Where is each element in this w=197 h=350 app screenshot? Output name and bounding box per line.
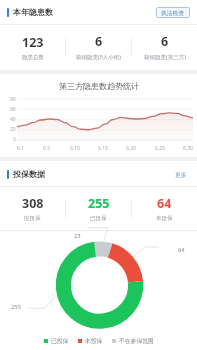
staticText: 已投保 [90, 215, 107, 222]
staticText: 核销隐患(5人小组) [76, 53, 121, 61]
staticText: 123 [22, 34, 44, 51]
staticText: 第三方隐患数趋势统计 [59, 81, 139, 91]
button[interactable]: 255 [66, 195, 131, 222]
staticText: 6.5 [43, 145, 51, 152]
staticText: 255 [88, 195, 110, 212]
staticText: 执法检查 [161, 9, 185, 16]
staticText: 未投保 [156, 215, 173, 222]
staticText: 投保数据 [13, 169, 45, 179]
staticText: 6.10 [70, 145, 80, 152]
button[interactable]: 更多 [172, 169, 190, 180]
staticText: 更多 [175, 171, 187, 178]
staticText: 已投保 [51, 337, 69, 344]
staticText: 23 [74, 232, 81, 240]
staticText: 本年隐患数 [13, 7, 53, 17]
staticText: 隐患总数 [22, 54, 44, 61]
staticText: 应投保 [24, 215, 41, 222]
staticText: 6 [95, 33, 103, 50]
staticText: 6 [161, 33, 169, 50]
staticText: 6.1 [17, 145, 25, 152]
staticText: 未投保 [85, 337, 103, 344]
button[interactable]: 123 [0, 34, 65, 61]
staticText: 64 [178, 246, 185, 254]
button[interactable]: 不在参保范围 [111, 336, 155, 345]
staticText: 6.30 [183, 145, 193, 152]
staticText: 80 [10, 96, 16, 103]
staticText: 0 [13, 136, 16, 143]
button[interactable]: 执法检查 [156, 7, 190, 18]
staticText: 40 [10, 116, 16, 123]
button[interactable]: 6 [66, 33, 131, 61]
staticText: 308 [22, 195, 44, 212]
staticText: 60 [10, 106, 16, 113]
staticText: 不在参保范围 [119, 337, 154, 344]
staticText: 255 [11, 303, 21, 311]
staticText: 64 [157, 195, 172, 212]
button[interactable]: 已投保 [43, 336, 70, 345]
button[interactable]: 308 [0, 195, 65, 222]
staticText: 6.15 [98, 145, 108, 152]
staticText: 核销隐患(第三方) [144, 53, 186, 61]
staticText: 6.20 [126, 145, 136, 152]
button[interactable]: 64 [132, 195, 197, 222]
staticText: 20 [10, 126, 16, 133]
staticText: 6.25 [155, 145, 165, 152]
button[interactable]: 6 [132, 33, 197, 61]
button[interactable]: 未投保 [77, 336, 104, 345]
